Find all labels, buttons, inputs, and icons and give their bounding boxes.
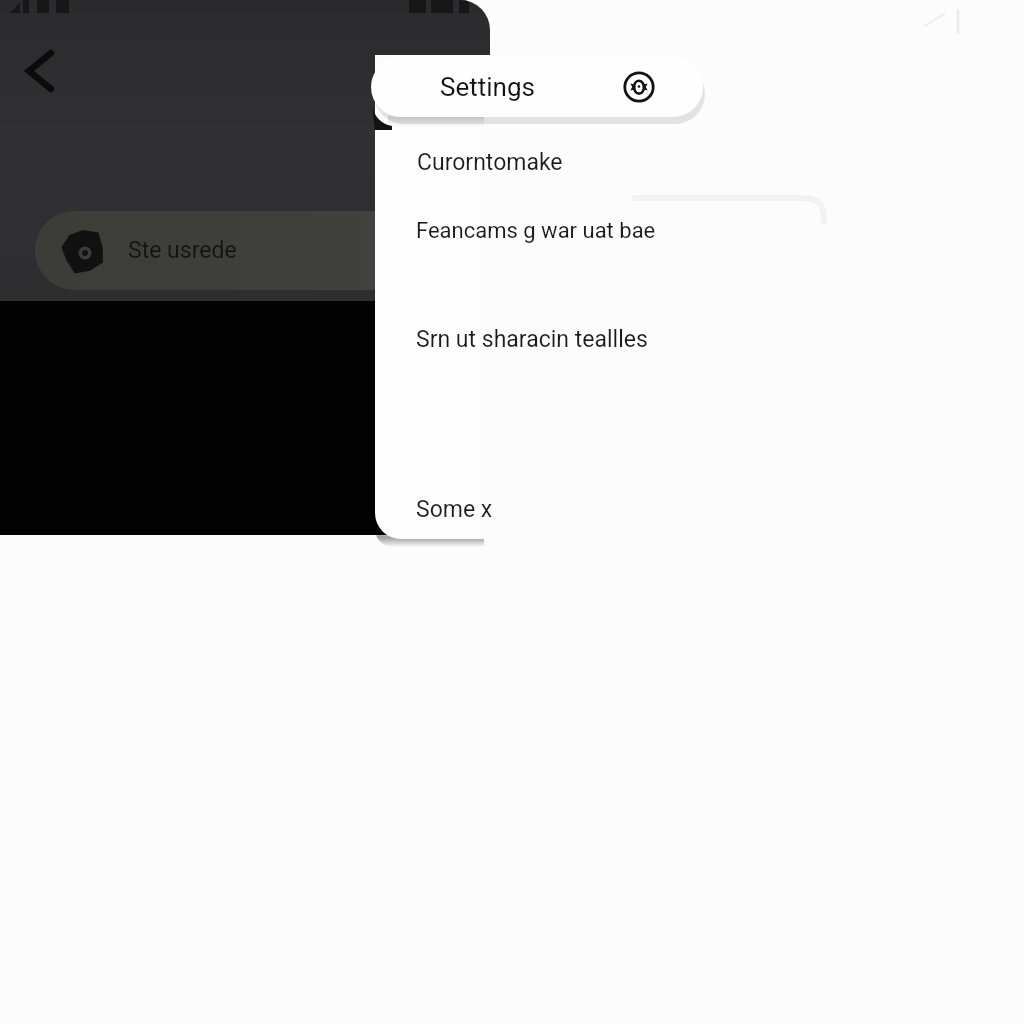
button[interactable]: Back	[14, 42, 78, 106]
staticText: Feancams g war uat bae	[416, 218, 656, 244]
button[interactable]: Some x	[375, 477, 675, 543]
staticText: Curorntomake	[417, 149, 563, 176]
button[interactable]: Settings options	[621, 69, 657, 105]
staticText: Srn ut sharacin teallles	[416, 326, 648, 353]
other: Account	[57, 225, 109, 277]
staticText: Ste usrede	[128, 237, 237, 264]
staticText: Some x	[416, 496, 493, 523]
button[interactable]: Srn ut sharacin teallles	[375, 307, 675, 373]
staticText: Settings	[440, 72, 535, 102]
button[interactable]: Account	[35, 211, 425, 290]
button[interactable]: Feancams g war uat bae	[375, 199, 675, 265]
button[interactable]: Curorntomake	[375, 131, 675, 197]
button[interactable]: Settings	[371, 57, 703, 117]
